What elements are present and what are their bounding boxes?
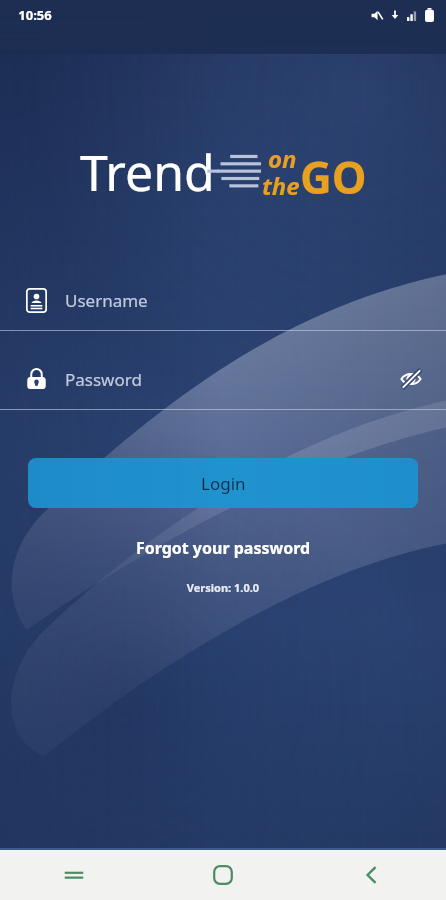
staticText: Username	[65, 289, 426, 312]
button[interactable]: Recents	[0, 850, 148, 900]
staticText: Trend	[80, 138, 215, 202]
staticText: Password	[65, 368, 396, 391]
button[interactable]: Username	[0, 278, 446, 331]
button[interactable]: Home	[148, 850, 297, 900]
staticText: Login	[201, 472, 246, 495]
button[interactable]: Back	[297, 850, 446, 900]
button[interactable]: Login	[28, 458, 418, 508]
staticText: on	[268, 142, 297, 175]
staticText: the	[262, 169, 300, 200]
staticText: Version: 1.0.0	[0, 580, 446, 595]
button[interactable]: Show password	[396, 364, 426, 394]
button[interactable]: Password	[0, 357, 446, 410]
staticText: GO	[300, 147, 367, 207]
button[interactable]: Forgot your password	[0, 534, 446, 562]
staticText: 10:56	[18, 6, 52, 24]
